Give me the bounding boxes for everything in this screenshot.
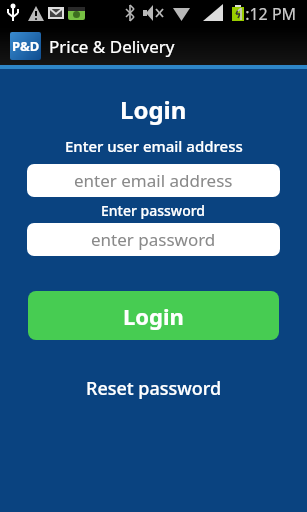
staticText: 1:12 PM xyxy=(236,3,297,25)
staticText: Login xyxy=(123,301,184,331)
staticText: enter password xyxy=(91,228,216,251)
staticText: P&D xyxy=(12,37,40,55)
button[interactable]: Reset password xyxy=(86,376,222,401)
staticText: Login xyxy=(120,93,187,126)
staticText: Enter user email address xyxy=(65,136,243,156)
button[interactable]: enter password xyxy=(27,223,280,256)
staticText: enter email address xyxy=(74,169,233,192)
button[interactable]: enter email address xyxy=(27,164,280,197)
button[interactable]: Login xyxy=(28,291,279,340)
staticText: Enter password xyxy=(101,201,206,220)
button[interactable]: P&D xyxy=(10,32,41,60)
staticText: Reset password xyxy=(86,376,222,401)
staticText: Price & Delivery xyxy=(49,35,175,58)
